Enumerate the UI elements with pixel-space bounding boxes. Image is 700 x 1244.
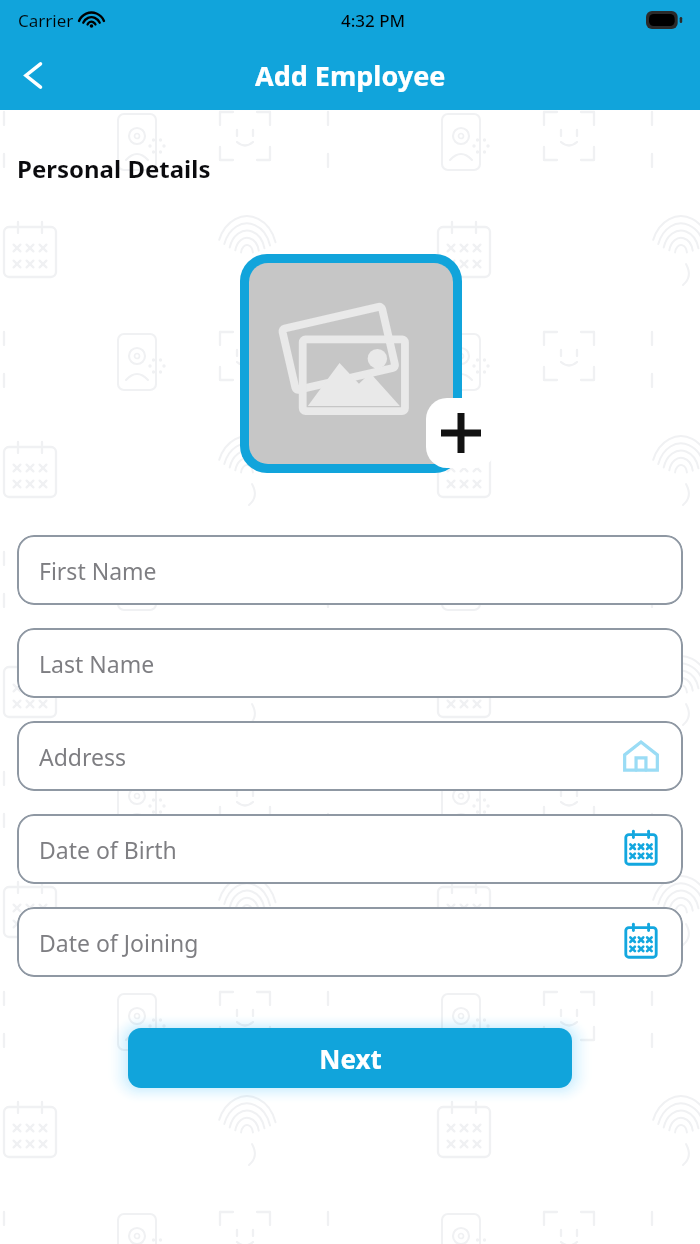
button[interactable]: Date of Birth bbox=[17, 814, 683, 884]
button[interactable]: Add photo bbox=[426, 398, 496, 468]
button[interactable]: Next bbox=[128, 1028, 572, 1088]
other: Pick date bbox=[622, 923, 660, 961]
staticText: Address bbox=[39, 741, 127, 772]
staticText: Next bbox=[319, 1041, 382, 1076]
staticText: Last Name bbox=[39, 648, 155, 679]
button[interactable]: Back bbox=[6, 48, 60, 102]
other: Pick date bbox=[622, 830, 660, 868]
button[interactable]: Address bbox=[17, 721, 683, 791]
button[interactable]: Last Name bbox=[17, 628, 683, 698]
button[interactable]: Add photo bbox=[240, 254, 462, 473]
staticText: Carrier bbox=[18, 9, 74, 32]
staticText: Personal Details bbox=[17, 152, 211, 185]
staticText: 4:32 PM bbox=[341, 9, 406, 32]
other: Address bbox=[622, 737, 660, 775]
staticText: Add Employee bbox=[255, 57, 446, 94]
staticText: Date of Joining bbox=[39, 927, 199, 958]
button[interactable]: Date of Joining bbox=[17, 907, 683, 977]
button[interactable]: First Name bbox=[17, 535, 683, 605]
staticText: First Name bbox=[39, 555, 157, 586]
staticText: Date of Birth bbox=[39, 834, 177, 865]
